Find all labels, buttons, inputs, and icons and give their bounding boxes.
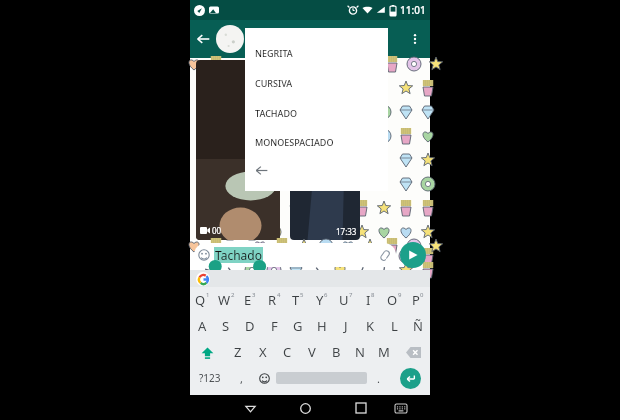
button[interactable]: D	[238, 313, 262, 339]
button[interactable]: F	[262, 313, 286, 339]
button[interactable]: Attach	[377, 247, 393, 263]
staticText: 17:33	[336, 226, 357, 237]
staticText: A	[198, 317, 207, 335]
staticText: J	[344, 317, 348, 335]
button[interactable]: Switch keyboard	[391, 398, 411, 418]
button[interactable]: A	[190, 313, 214, 339]
button[interactable]: T	[286, 287, 310, 313]
staticText: S	[222, 317, 230, 335]
staticText: K	[366, 317, 375, 335]
button[interactable]: Z	[225, 339, 250, 365]
staticText: C	[283, 343, 292, 361]
button[interactable]: .	[367, 365, 390, 391]
button[interactable]: Home	[295, 398, 315, 418]
staticText: TACHADO	[255, 107, 298, 119]
staticText: W	[218, 291, 231, 309]
button[interactable]: C	[275, 339, 300, 365]
staticText: H	[317, 317, 327, 335]
button[interactable]: L	[382, 313, 406, 339]
button[interactable]: S	[214, 313, 238, 339]
staticText: 5	[300, 291, 304, 299]
button[interactable]: W	[214, 287, 238, 313]
button[interactable]: CURSIVA	[245, 68, 388, 98]
button[interactable]: Shift	[190, 339, 225, 365]
button[interactable]: Recents	[351, 398, 371, 418]
staticText: 6	[324, 291, 328, 299]
staticText: D	[245, 317, 255, 335]
button[interactable]: Q	[190, 287, 214, 313]
button[interactable]: Back	[190, 26, 216, 52]
staticText: 3	[252, 291, 256, 299]
staticText: 8	[371, 291, 375, 299]
button[interactable]: M	[372, 339, 396, 365]
button[interactable]: X	[250, 339, 275, 365]
button[interactable]: G	[286, 313, 310, 339]
button[interactable]: N	[348, 339, 372, 365]
staticText: Y	[316, 291, 324, 309]
button[interactable]: Back	[245, 156, 388, 185]
staticText: Tachado	[215, 247, 262, 263]
staticText: X	[259, 343, 267, 361]
staticText: M	[378, 343, 390, 361]
button[interactable]: O	[382, 287, 406, 313]
staticText: 1	[206, 291, 210, 299]
button[interactable]: Backspace	[396, 339, 430, 365]
staticText: Ñ	[413, 317, 423, 335]
button[interactable]: J	[334, 313, 358, 339]
button[interactable]: Emoji	[253, 365, 276, 391]
button[interactable]: MONOESPACIADO	[245, 127, 388, 156]
button[interactable]: H	[310, 313, 334, 339]
button[interactable]: I	[358, 287, 382, 313]
staticText: G	[293, 317, 303, 335]
button[interactable]: U	[334, 287, 358, 313]
button[interactable]: E	[238, 287, 262, 313]
button[interactable]: B	[324, 339, 348, 365]
staticText: L	[391, 317, 398, 335]
staticText: I	[366, 291, 371, 309]
button[interactable]: Back	[240, 398, 260, 418]
staticText: 00	[212, 225, 222, 236]
button[interactable]: V	[300, 339, 324, 365]
button[interactable]: R	[262, 287, 286, 313]
staticText: 11:01	[400, 3, 426, 17]
button[interactable]: Y	[310, 287, 334, 313]
staticText: N	[355, 343, 365, 361]
button[interactable]: K	[358, 313, 382, 339]
button[interactable]: Tachado	[194, 243, 396, 267]
staticText: V	[308, 343, 316, 361]
staticText: F	[271, 317, 278, 335]
button[interactable]: TACHADO	[245, 98, 388, 127]
staticText: P	[412, 291, 420, 309]
staticText: MONOESPACIADO	[255, 136, 334, 148]
button[interactable]: NEGRITA	[245, 38, 388, 68]
button[interactable]: More options	[402, 26, 428, 52]
staticText: O	[387, 291, 398, 309]
staticText: .	[377, 371, 380, 386]
staticText: Z	[234, 343, 242, 361]
staticText: U	[339, 291, 349, 309]
button[interactable]: ,	[230, 365, 253, 391]
button[interactable]: ?123	[190, 365, 230, 391]
button[interactable]: 17:33	[290, 60, 360, 240]
button[interactable]: Google	[196, 272, 210, 286]
staticText: Vernes	[250, 24, 293, 42]
button[interactable]: 00	[196, 60, 280, 240]
staticText: T	[292, 291, 300, 309]
staticText: ,	[240, 371, 243, 386]
button[interactable]: Send	[400, 242, 426, 268]
staticText: ?123	[199, 371, 221, 385]
staticText: 0	[420, 291, 424, 299]
button[interactable]: Vernes	[250, 24, 402, 55]
button[interactable]: Enter	[400, 368, 421, 389]
button[interactable]: Profile photo	[216, 25, 244, 53]
staticText: CURSIVA	[255, 77, 293, 89]
button[interactable]: Ñ	[406, 313, 430, 339]
staticText: B	[332, 343, 341, 361]
staticText: 9	[398, 291, 402, 299]
staticText: NEGRITA	[255, 47, 293, 59]
button[interactable]: P	[406, 287, 430, 313]
staticText: Mariluz, Pabl…	[250, 43, 312, 55]
staticText: R	[268, 291, 277, 309]
staticText: E	[244, 291, 252, 309]
